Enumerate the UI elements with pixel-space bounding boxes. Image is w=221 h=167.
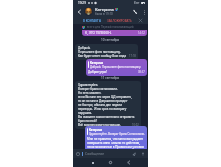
staticText: 11 сентября — [101, 76, 120, 80]
button[interactable]: К, ЭТО ТЕЛЕФОН. — [82, 30, 147, 36]
staticText: Катерина — [90, 61, 104, 65]
staticText: брак почтой? — [78, 119, 97, 123]
button[interactable]: Profile photo — [84, 7, 93, 16]
staticText: совершать явно можно то действия, — [87, 141, 140, 145]
button[interactable]: Здравствуйте. — [75, 81, 141, 129]
button[interactable]: Back — [124, 158, 133, 167]
button[interactable]: Call — [129, 6, 140, 17]
staticText: 10 сентября — [101, 38, 120, 42]
staticText: 8 вт — [134, 1, 140, 5]
staticText: всего для Первый показывающий — [87, 25, 134, 29]
staticText: 19:29 — [78, 1, 86, 5]
button[interactable]: ЗАБЛОКИРОВАТЬ — [106, 17, 133, 24]
staticText: Катерина — [95, 7, 114, 12]
staticText: ЗАБЛОКИРОВАТЬ — [107, 19, 132, 23]
staticText: несогласованные в Правилами условия — [87, 145, 144, 149]
staticText: Доброе утро! — [88, 70, 107, 74]
button[interactable]: Home — [106, 158, 115, 167]
button[interactable]: Recent apps — [88, 158, 97, 167]
staticText: была в 19:10 — [95, 12, 113, 16]
staticText: Возврат брака согласовали. — [78, 87, 118, 91]
staticText: 17:18 — [129, 54, 136, 58]
button[interactable]: В КОНТАКТЫ — [82, 17, 103, 24]
staticText: Как будет ответ сообщу Вам сюда — [78, 54, 127, 58]
staticText: Здравствуйте. — [78, 83, 99, 87]
staticText: Катерина — [89, 128, 103, 132]
staticText: К, ЭТО ТЕЛЕФОН. — [85, 31, 112, 35]
staticText: Добрый. Перешлите фото поставщику. — [90, 65, 141, 69]
staticText: не быстро, обычно две недели — [78, 103, 123, 107]
staticText: Всё компенсирует поставщик. — [78, 123, 121, 127]
staticText: 08:37 — [138, 70, 145, 74]
button[interactable]: Attach file — [130, 150, 137, 157]
button[interactable]: Voice message — [139, 150, 146, 157]
staticText: Вы сможете самостоятельно отправить — [78, 115, 135, 119]
staticText: нарушим. — [78, 111, 93, 115]
staticText: Но есть момент. — [78, 91, 102, 95]
button[interactable]: Emoji — [73, 149, 82, 158]
staticText: В КОНТАКТЫ — [83, 19, 102, 23]
button[interactable]: Добрый. — [75, 44, 138, 60]
staticText: 10:02 — [132, 123, 139, 127]
staticText: Мне не нравится, что меня вынуждают — [87, 137, 143, 141]
button[interactable]: Close — [136, 17, 145, 24]
staticText: Здравствуйте. Возврат брака Согласовали. — [89, 132, 145, 136]
staticText: если Вы мне его через ЦД отправить, — [78, 95, 132, 99]
button[interactable]: Back — [73, 6, 84, 17]
staticText: Перешлите фото поставщику. — [78, 50, 121, 54]
button[interactable]: Катерина — [86, 59, 147, 76]
staticText: переезды. И вы срок по возврату — [78, 107, 127, 111]
staticText: Добрый. — [78, 46, 91, 50]
staticText: 14:12 — [138, 31, 145, 35]
staticText: то он ко мне в Дзержинск приедет — [78, 99, 128, 103]
button[interactable]: More options — [140, 8, 148, 16]
button[interactable]: Катерина — [85, 126, 147, 151]
staticText: Сообщение — [85, 151, 105, 156]
